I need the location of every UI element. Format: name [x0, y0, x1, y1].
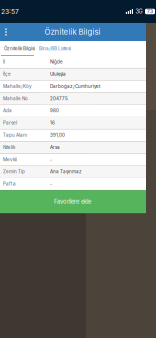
staticText: İlçe [3, 71, 11, 77]
staticText: Mevkii [3, 157, 17, 162]
staticText: - [50, 181, 52, 187]
button[interactable]: Öznitelik Bilgisi [1, 41, 38, 56]
staticText: 3G [135, 8, 142, 15]
staticText: Mahalle No [3, 96, 28, 101]
staticText: 391,00 [50, 132, 65, 138]
staticText: Arsa [50, 145, 60, 150]
staticText: Ulukışla [50, 71, 66, 77]
staticText: 16 [50, 120, 55, 126]
staticText: - [50, 157, 52, 162]
staticText: Zemin Tip [3, 169, 25, 174]
staticText: Darboğaz/Cumhuriyet [50, 84, 100, 89]
button[interactable]: Menu [0, 23, 13, 41]
staticText: Ana Taşınmaz [50, 169, 82, 174]
staticText: 980 [50, 108, 59, 113]
staticText: Favorilere ekle [54, 198, 91, 205]
staticText: Mahalle/Köy [3, 84, 32, 89]
staticText: Parsel [3, 120, 17, 126]
staticText: Ada [3, 108, 12, 113]
staticText: Nitelik [3, 145, 15, 150]
staticText: Öznitelik Bilgisi [4, 46, 35, 51]
staticText: Bina/BB Listesi [39, 46, 71, 51]
staticText: Niğde [50, 59, 63, 65]
staticText: Pafta [3, 181, 16, 187]
button[interactable]: Bina/BB Listesi [38, 41, 72, 56]
button[interactable]: Favorilere ekle [0, 190, 146, 213]
staticText: İl [3, 59, 5, 65]
staticText: Öznitelik Bilgisi [44, 27, 100, 37]
staticText: 23:57 [1, 7, 19, 16]
staticText: 204775 [50, 96, 68, 101]
staticText: 73 [147, 9, 153, 14]
staticText: Tapu Alanı [3, 132, 27, 138]
